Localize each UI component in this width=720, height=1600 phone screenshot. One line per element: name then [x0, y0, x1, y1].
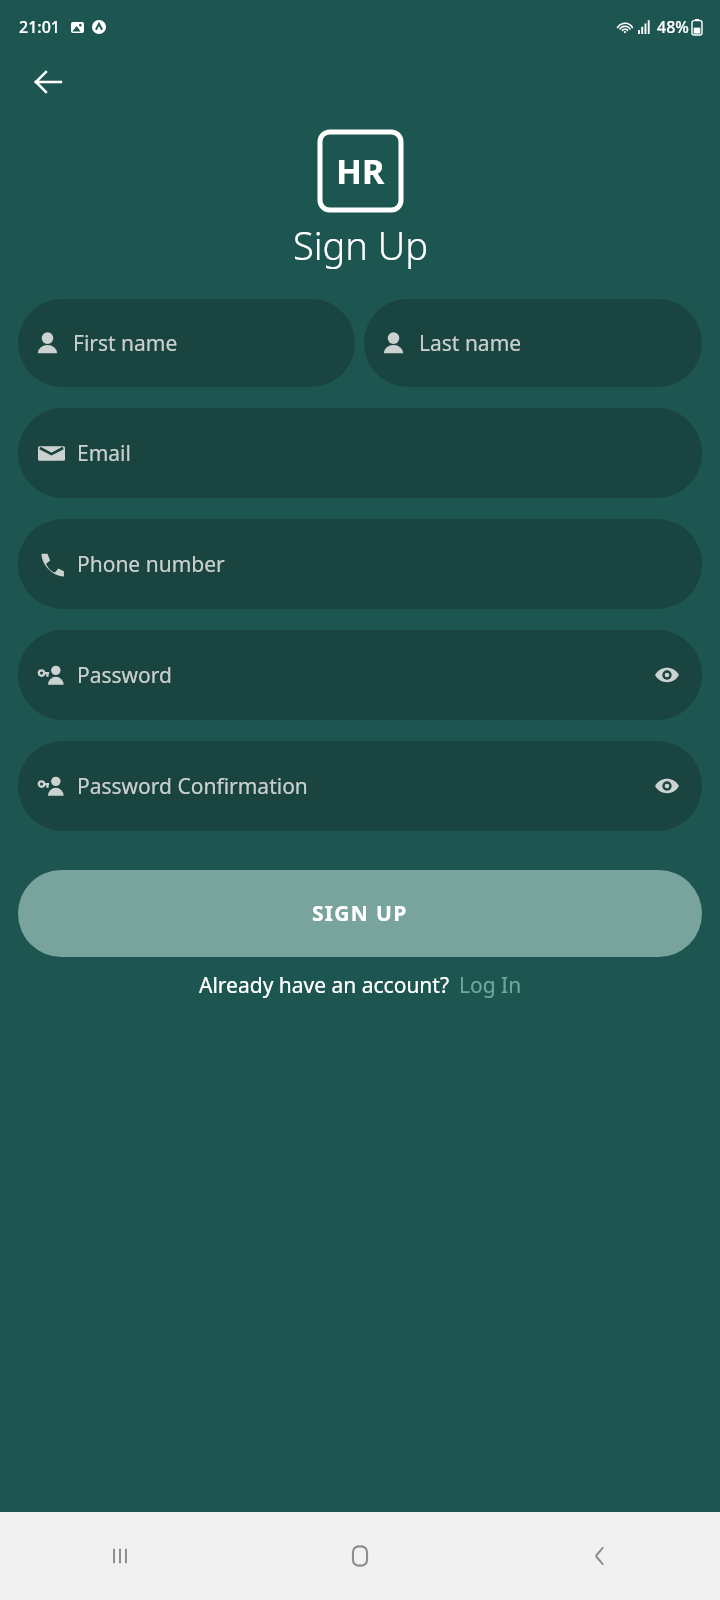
button[interactable]: Email [18, 408, 702, 498]
button[interactable]: Phone number [18, 519, 702, 609]
staticText: 48% [657, 16, 689, 38]
staticText: SIGN UP [312, 899, 408, 928]
staticText: HR [336, 148, 385, 194]
staticText: Email [77, 439, 131, 468]
button[interactable]: Back [20, 54, 76, 110]
staticText: First name [73, 329, 178, 358]
staticText: Sign Up [293, 219, 428, 271]
button[interactable]: SIGN UP [18, 870, 702, 957]
button[interactable]: Back [480, 1512, 720, 1600]
staticText: Log In [459, 971, 522, 1000]
staticText: Password Confirmation [77, 772, 308, 801]
button[interactable]: Log In [459, 971, 522, 1000]
staticText: Phone number [77, 550, 225, 579]
staticText: Already have an account? [199, 971, 450, 1000]
staticText: Password [77, 661, 172, 690]
staticText: Last name [419, 329, 522, 358]
button[interactable]: Password [18, 630, 702, 720]
button[interactable]: First name [18, 299, 355, 387]
button[interactable]: Last name [364, 299, 702, 387]
button[interactable]: Password Confirmation [18, 741, 702, 831]
button[interactable]: Show password [650, 769, 684, 803]
button[interactable]: Show password [650, 658, 684, 692]
button[interactable]: Home [240, 1512, 480, 1600]
staticText: 21:01 [19, 16, 60, 38]
button[interactable]: Recent apps [0, 1512, 240, 1600]
